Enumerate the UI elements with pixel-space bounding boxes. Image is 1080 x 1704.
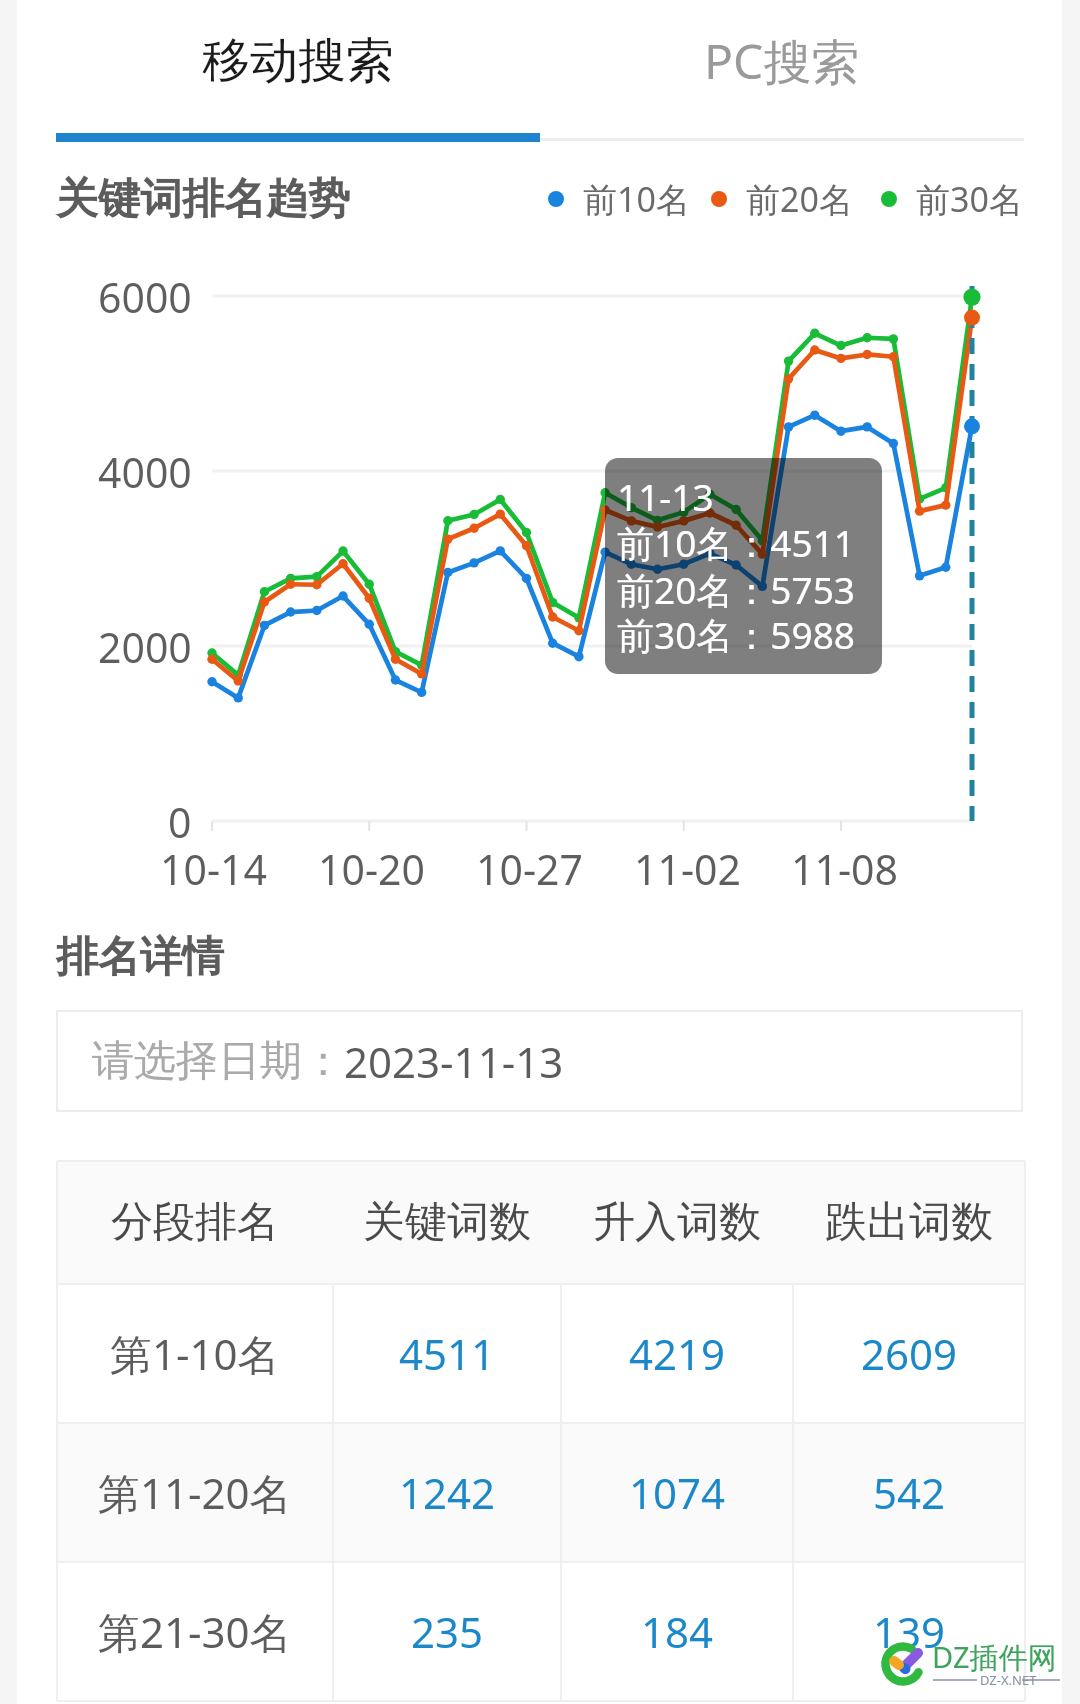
staticText: 跌出词数 bbox=[825, 1196, 993, 1249]
staticText: 2000 bbox=[98, 619, 192, 675]
button[interactable]: 第1-10名 bbox=[57, 1284, 1025, 1423]
button[interactable]: 关键词排名趋势折线图 bbox=[195, 270, 985, 840]
staticText: 升入词数 bbox=[593, 1196, 761, 1249]
staticText: 移动搜索 bbox=[202, 31, 394, 91]
staticText: 139 bbox=[873, 1603, 946, 1660]
staticText: 第11-20名 bbox=[98, 1464, 292, 1521]
staticText: 前30名 bbox=[916, 176, 1023, 222]
button[interactable]: 第11-20名 bbox=[57, 1423, 1025, 1562]
button[interactable]: 跌出词数 bbox=[793, 1161, 1025, 1284]
staticText: 排名详情 bbox=[56, 931, 224, 984]
button[interactable]: 前10名 bbox=[538, 171, 700, 227]
staticText: 10-27 bbox=[476, 841, 584, 897]
staticText: 11-02 bbox=[634, 841, 742, 897]
staticText: 请选择日期： bbox=[92, 1035, 344, 1088]
staticText: 2023-11-13 bbox=[344, 1033, 564, 1090]
staticText: 4219 bbox=[629, 1325, 726, 1382]
staticText: 关键词数 bbox=[363, 1196, 531, 1249]
button[interactable]: 前30名 bbox=[871, 171, 1033, 227]
staticText: 第1-10名 bbox=[110, 1325, 280, 1382]
button[interactable]: PC搜索 bbox=[540, 0, 1024, 122]
staticText: 分段排名 bbox=[111, 1196, 279, 1249]
staticText: 第21-30名 bbox=[98, 1603, 292, 1660]
staticText: 0 bbox=[168, 794, 192, 850]
button[interactable]: 请选择日期： bbox=[57, 1011, 1022, 1111]
staticText: 6000 bbox=[98, 269, 192, 325]
staticText: 542 bbox=[873, 1464, 946, 1521]
staticText: 10-14 bbox=[160, 841, 268, 897]
staticText: 前20名：5753 bbox=[617, 564, 855, 615]
staticText: 前10名 bbox=[583, 176, 690, 222]
staticText: 关键词排名趋势 bbox=[56, 173, 350, 226]
staticText: DZ插件网 bbox=[932, 1637, 1057, 1677]
staticText: 4511 bbox=[399, 1325, 496, 1382]
staticText: 1074 bbox=[629, 1464, 726, 1521]
staticText: PC搜索 bbox=[704, 28, 860, 94]
button[interactable]: 前20名 bbox=[701, 171, 863, 227]
staticText: 11-13 bbox=[617, 471, 714, 521]
button[interactable]: 分段排名 bbox=[57, 1161, 333, 1284]
staticText: 4000 bbox=[98, 444, 192, 500]
staticText: 1242 bbox=[399, 1464, 496, 1521]
staticText: 10-20 bbox=[318, 841, 426, 897]
button[interactable]: 关键词数 bbox=[333, 1161, 561, 1284]
staticText: 前20名 bbox=[746, 176, 853, 222]
button[interactable]: 移动搜索 bbox=[56, 0, 540, 122]
staticText: 11-08 bbox=[791, 841, 899, 897]
staticText: 184 bbox=[641, 1603, 714, 1660]
staticText: 235 bbox=[411, 1603, 484, 1660]
staticText: 前30名：5988 bbox=[617, 609, 855, 660]
button[interactable]: 第21-30名 bbox=[57, 1562, 1025, 1701]
button[interactable]: 升入词数 bbox=[561, 1161, 793, 1284]
staticText: DZ-X.NET bbox=[980, 1671, 1037, 1689]
staticText: 2609 bbox=[861, 1325, 958, 1382]
staticText: 前10名：4511 bbox=[617, 517, 855, 568]
